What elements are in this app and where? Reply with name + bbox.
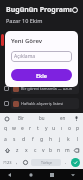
staticText: ı [61,125,63,132]
button[interactable]: l [74,136,81,143]
staticText: . [65,159,67,166]
button[interactable]: g [38,136,45,143]
staticText: e [21,125,24,132]
button[interactable]: Ana ekran [20,173,41,177]
staticText: , [16,159,18,166]
button[interactable]: m [63,147,71,154]
button[interactable]: en [52,115,73,121]
button[interactable]: t [35,125,41,132]
staticText: t [37,125,39,132]
staticText: k [67,136,70,143]
button[interactable]: q [2,125,9,132]
button[interactable]: w [11,125,17,132]
button[interactable]: v [39,147,47,154]
staticText: Pazar 10 Ekim [6,17,43,24]
button[interactable]: Bir [10,115,31,121]
button[interactable]: Boşluk [31,159,61,166]
staticText: y [45,125,48,132]
staticText: Yeni Görev [11,37,43,45]
button[interactable]: u [51,125,57,132]
button[interactable]: Gönder [70,158,81,167]
button[interactable]: b [47,147,55,154]
button[interactable]: Açıklama [11,51,72,62]
button[interactable]: c [31,147,39,154]
staticText: u [52,125,56,132]
staticText: c [34,147,37,154]
staticText: l [77,136,79,143]
staticText: o [68,125,72,132]
button[interactable]: f [29,136,36,143]
button[interactable]: h [47,136,54,143]
button[interactable]: ı [59,125,65,132]
staticText: Ekle [36,72,48,79]
staticText: Türkçe [41,160,52,165]
button[interactable]: Profil [72,4,78,15]
staticText: Haftalık alışveriş listesi [21,101,64,106]
button[interactable]: Bir görevi tamamla — uzun [4,82,79,94]
button[interactable]: Mikrofon [73,115,80,122]
button[interactable]: y [43,125,49,132]
button[interactable]: p [75,125,81,132]
button[interactable]: Ekle [11,69,72,81]
button[interactable]: d [20,136,27,143]
button[interactable]: Son uygulamalar [41,173,62,177]
staticText: n [57,147,61,154]
button[interactable]: k [65,136,72,143]
staticText: h [49,136,53,143]
staticText: Bir görevi tamamla — uzun [21,86,73,91]
staticText: a [4,136,7,143]
staticText: f [32,136,34,143]
button[interactable]: Emoji [21,160,30,165]
staticText: v [42,147,45,154]
staticText: p [76,125,80,132]
staticText: Bir [18,115,24,121]
button[interactable]: Haftalık alışveriş listesi [4,97,79,109]
button[interactable]: a [2,136,9,143]
staticText: r [29,125,32,132]
button[interactable]: o [67,125,73,132]
staticText: ?123 [3,160,12,165]
staticText: g [40,136,44,143]
button[interactable]: x [22,147,31,154]
button[interactable]: Ayarlar [3,115,10,122]
staticText: m [65,147,70,154]
button[interactable]: Geri [0,173,20,177]
staticText: Bugünün Programı [6,5,72,15]
button[interactable]: ?123 [2,160,13,165]
staticText: q [4,125,8,132]
staticText: b [49,147,53,154]
staticText: j [59,136,61,143]
button[interactable]: e [19,125,25,132]
button[interactable]: Shift [1,148,13,153]
staticText: s [13,136,16,143]
staticText: d [22,136,26,143]
button[interactable]: bu [31,115,52,121]
button[interactable]: . [62,159,70,166]
staticText: Açıklama [14,53,36,60]
button[interactable]: j [56,136,63,143]
button[interactable]: r [27,125,33,132]
staticText: x [25,147,28,154]
button[interactable]: s [11,136,18,143]
button[interactable]: Sil [71,148,82,153]
button[interactable]: Klavyeyi gizle [62,173,83,177]
staticText: bu [39,115,45,121]
staticText: en [60,115,66,121]
button[interactable]: n [55,147,63,154]
button[interactable]: z [13,147,22,154]
staticText: z [16,147,19,154]
staticText: w [12,125,16,132]
button[interactable]: , [13,159,21,166]
